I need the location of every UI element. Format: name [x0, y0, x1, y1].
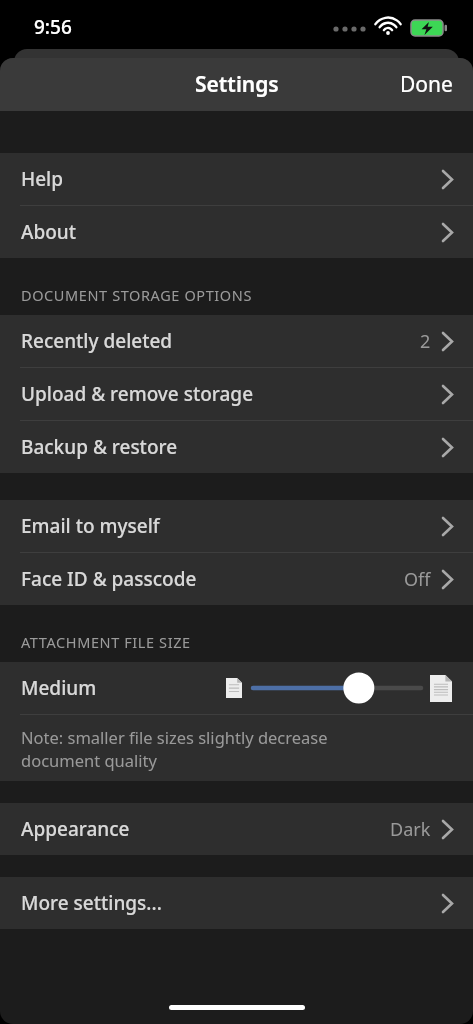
staticText: Off	[404, 567, 431, 592]
button[interactable]: Recently deleted	[0, 315, 473, 367]
staticText: Email to myself	[21, 513, 160, 539]
staticText: Appearance	[21, 816, 130, 842]
button[interactable]: Upload & remove storage	[0, 368, 473, 420]
staticText: Dark	[390, 817, 431, 842]
button[interactable]: Medium	[0, 662, 473, 714]
button[interactable]: More settings...	[0, 877, 473, 929]
button[interactable]: Email to myself	[0, 500, 473, 552]
staticText: Backup & restore	[21, 434, 178, 460]
staticText: Settings	[195, 70, 279, 99]
button[interactable]: About	[0, 206, 473, 258]
staticText: More settings...	[21, 890, 162, 916]
staticText: Medium	[21, 675, 97, 701]
button[interactable]: Backup & restore	[0, 421, 473, 473]
staticText: Face ID & passcode	[21, 566, 197, 592]
staticText: Help	[21, 166, 64, 192]
staticText: 9:56	[34, 14, 72, 40]
staticText: DOCUMENT STORAGE OPTIONS	[21, 285, 252, 305]
staticText: Recently deleted	[21, 328, 173, 354]
staticText: Upload & remove storage	[21, 381, 254, 407]
button[interactable]: Face ID & passcode	[0, 553, 473, 605]
staticText: Note: smaller file sizes slightly decrea…	[21, 726, 328, 772]
staticText: Done	[400, 70, 453, 99]
button[interactable]: Done	[380, 60, 473, 109]
staticText: ATTACHMENT FILE SIZE	[21, 632, 191, 652]
button[interactable]: Help	[0, 153, 473, 205]
button[interactable]: Appearance	[0, 803, 473, 855]
staticText: About	[21, 219, 77, 245]
staticText: 2	[420, 329, 431, 354]
